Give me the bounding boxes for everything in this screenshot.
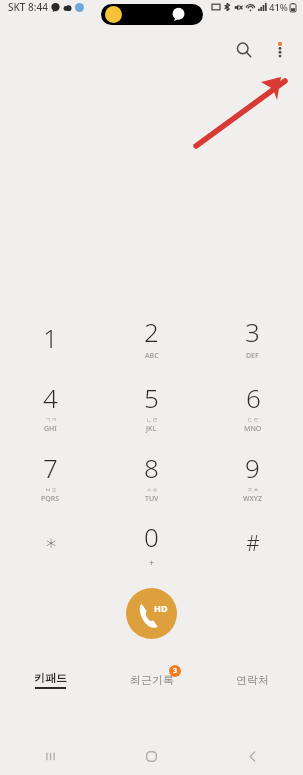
staticText: HD	[154, 602, 168, 614]
button[interactable]: More options	[263, 33, 297, 67]
staticText: 7	[43, 450, 58, 485]
staticText: 키패드	[34, 671, 67, 685]
staticText: 8	[144, 450, 159, 485]
staticText: 9	[245, 450, 260, 485]
staticText: 6	[246, 380, 261, 415]
button[interactable]: 최근기록	[101, 665, 202, 695]
staticText: 연락처	[236, 673, 269, 687]
button[interactable]: Search	[225, 31, 263, 69]
staticText: TUV	[145, 494, 159, 504]
staticText: ㅅㅎ	[146, 486, 158, 494]
staticText: 0	[144, 519, 159, 554]
button[interactable]: 2	[101, 302, 202, 372]
button[interactable]: 키패드	[0, 665, 101, 695]
button[interactable]: 8	[101, 442, 202, 512]
button[interactable]: 6	[202, 372, 303, 442]
staticText: 2	[144, 314, 159, 349]
staticText: 3	[173, 666, 178, 676]
button[interactable]: ∗	[0, 512, 101, 574]
button[interactable]: 4	[0, 372, 101, 442]
button[interactable]: 연락처	[202, 665, 303, 695]
button[interactable]: Back	[202, 737, 303, 775]
staticText: JKL	[146, 424, 157, 434]
button[interactable]: 3	[202, 302, 303, 372]
staticText: PQRS	[41, 494, 60, 504]
staticText: ㄴㄹ	[146, 416, 158, 424]
button[interactable]: Call	[126, 588, 177, 639]
button[interactable]: Recents	[0, 737, 101, 775]
staticText: 최근기록	[130, 673, 174, 687]
button[interactable]: 5	[101, 372, 202, 442]
staticText: 1	[43, 320, 58, 355]
staticText: MNO	[244, 424, 262, 434]
staticText: 5	[144, 380, 159, 415]
button[interactable]: #	[202, 512, 303, 574]
staticText: ㄱㅋ	[45, 416, 57, 424]
staticText: WXYZ	[243, 494, 262, 504]
staticText: ㅂㅍ	[45, 486, 57, 494]
button[interactable]: 9	[202, 442, 303, 512]
staticText: ㄷㅌ	[247, 416, 259, 424]
staticText: 4	[43, 380, 58, 415]
staticText: ABC	[145, 351, 159, 361]
staticText: ㅈㅊ	[247, 486, 259, 494]
button[interactable]: 0	[101, 512, 202, 574]
staticText: GHI	[44, 424, 57, 434]
staticText: +	[149, 556, 155, 568]
button[interactable]: 7	[0, 442, 101, 512]
staticText: ∗	[44, 531, 58, 555]
staticText: SKT 8:44	[8, 0, 48, 14]
staticText: 41%	[269, 1, 288, 14]
staticText: DEF	[246, 351, 259, 361]
button[interactable]: Home	[101, 737, 202, 775]
button[interactable]: 1	[0, 302, 101, 372]
staticText: 3	[245, 314, 260, 349]
staticText: #	[246, 529, 260, 558]
